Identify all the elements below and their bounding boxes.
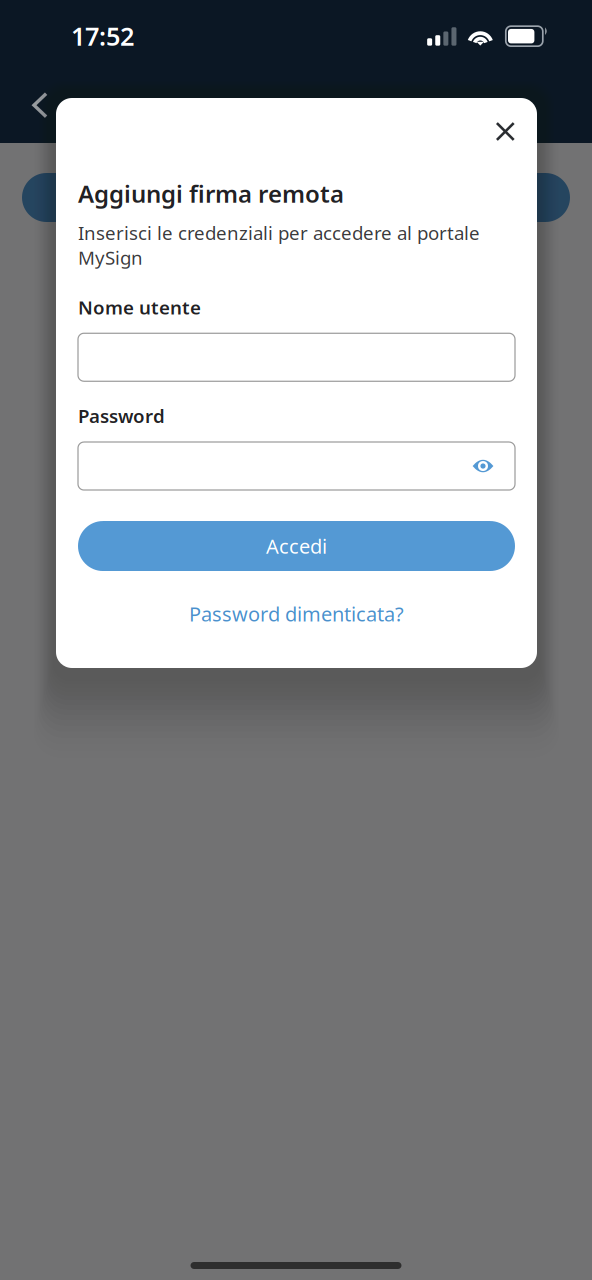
staticText: Inserisci le credenziali per accedere al… (78, 220, 480, 270)
staticText: Aggiungi firma remota (78, 177, 344, 209)
staticText: Firma digitale (210, 96, 381, 130)
staticText: Accedi (266, 533, 327, 559)
button[interactable]: Password dimenticata? (78, 600, 515, 627)
staticText: 17:52 (71, 19, 134, 53)
button[interactable]: Back (16, 81, 64, 129)
button[interactable]: Show password (461, 444, 505, 488)
staticText: Password (78, 403, 165, 428)
staticText: Nome utente (78, 295, 201, 320)
staticText: Password dimenticata? (189, 600, 404, 627)
button[interactable]: Accedi (78, 521, 515, 571)
button[interactable]: Close (485, 111, 525, 151)
